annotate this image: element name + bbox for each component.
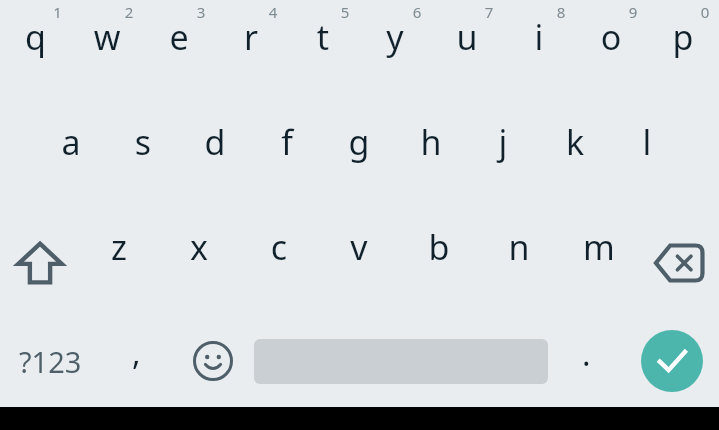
staticText: 3	[165, 2, 237, 22]
button[interactable]: u	[431, 0, 503, 105]
button[interactable]: y	[359, 0, 431, 105]
button[interactable]: q	[0, 0, 71, 105]
staticText: 4	[237, 2, 309, 22]
staticText: d	[179, 119, 251, 165]
staticText: y	[359, 14, 431, 60]
button[interactable]: Shift	[0, 210, 79, 315]
staticText: w	[71, 14, 143, 60]
button[interactable]: ?123	[0, 315, 100, 407]
staticText: o	[575, 14, 647, 60]
staticText: 9	[597, 2, 669, 22]
button[interactable]: j	[467, 105, 539, 210]
staticText: n	[479, 224, 559, 270]
staticText: u	[431, 14, 503, 60]
button[interactable]: t	[287, 0, 359, 105]
staticText: .	[582, 332, 591, 376]
button[interactable]: c	[239, 210, 319, 315]
button[interactable]: h	[395, 105, 467, 210]
button[interactable]: z	[79, 210, 159, 315]
staticText: v	[319, 224, 399, 270]
button[interactable]: w	[71, 0, 143, 105]
button[interactable]: p	[647, 0, 719, 105]
button[interactable]: d	[179, 105, 251, 210]
button[interactable]: ,	[100, 315, 172, 407]
staticText: 7	[453, 2, 525, 22]
staticText: p	[647, 14, 719, 60]
staticText: g	[323, 119, 395, 165]
staticText: i	[503, 14, 575, 60]
button[interactable]: .	[548, 315, 624, 407]
staticText: z	[79, 224, 159, 270]
staticText: 1	[22, 2, 93, 22]
staticText: 0	[669, 2, 719, 22]
staticText: 5	[309, 2, 381, 22]
staticText: ,	[132, 331, 141, 375]
button[interactable]: o	[575, 0, 647, 105]
staticText: e	[143, 14, 215, 60]
staticText: l	[611, 119, 683, 165]
button[interactable]: s	[107, 105, 179, 210]
button[interactable]: i	[503, 0, 575, 105]
button[interactable]: f	[251, 105, 323, 210]
button[interactable]: Emoji	[172, 315, 254, 407]
staticText: f	[251, 119, 323, 165]
button[interactable]: k	[539, 105, 611, 210]
staticText: ?123	[19, 342, 82, 381]
staticText: s	[107, 119, 179, 165]
staticText: q	[0, 14, 71, 60]
button[interactable]: Enter	[641, 330, 703, 392]
button[interactable]: n	[479, 210, 559, 315]
staticText: a	[35, 119, 107, 165]
staticText: c	[239, 224, 319, 270]
button[interactable]: x	[159, 210, 239, 315]
button[interactable]: r	[215, 0, 287, 105]
staticText: x	[159, 224, 239, 270]
button[interactable]: g	[323, 105, 395, 210]
button[interactable]: Backspace	[639, 210, 719, 315]
staticText: r	[215, 14, 287, 60]
staticText: m	[559, 224, 639, 270]
staticText: b	[399, 224, 479, 270]
staticText: h	[395, 119, 467, 165]
staticText: 6	[381, 2, 453, 22]
button[interactable]: e	[143, 0, 215, 105]
staticText: 8	[525, 2, 597, 22]
staticText: j	[467, 119, 539, 165]
button[interactable]: m	[559, 210, 639, 315]
button[interactable]: b	[399, 210, 479, 315]
staticText: t	[287, 14, 359, 60]
staticText: k	[539, 119, 611, 165]
button[interactable]: l	[611, 105, 683, 210]
button[interactable]: a	[35, 105, 107, 210]
button[interactable]: v	[319, 210, 399, 315]
staticText: 2	[93, 2, 165, 22]
